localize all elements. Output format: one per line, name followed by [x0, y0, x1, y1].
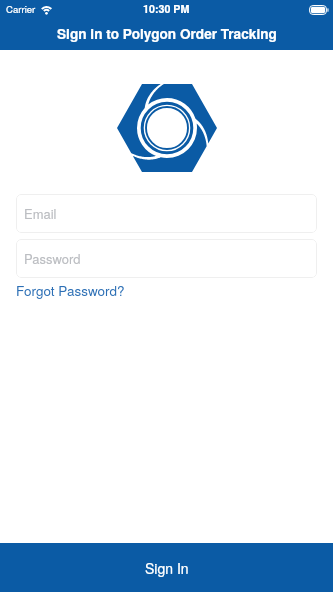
- button[interactable]: Sign In: [0, 543, 333, 592]
- other: Battery full: [309, 5, 329, 15]
- staticText: 10:30 PM: [143, 1, 190, 16]
- staticText: Sign In: [145, 558, 189, 578]
- staticText: Carrier: [6, 2, 36, 16]
- other: Wi-Fi signal: [40, 4, 53, 14]
- staticText: Forgot Password?: [16, 281, 125, 300]
- button[interactable]: Email: [16, 194, 317, 233]
- button[interactable]: Password: [16, 239, 317, 278]
- staticText: Sign in to Polygon Order Tracking: [57, 24, 277, 44]
- staticText: Password: [24, 249, 81, 268]
- button[interactable]: Forgot Password?: [16, 281, 125, 300]
- staticText: Email: [24, 204, 57, 223]
